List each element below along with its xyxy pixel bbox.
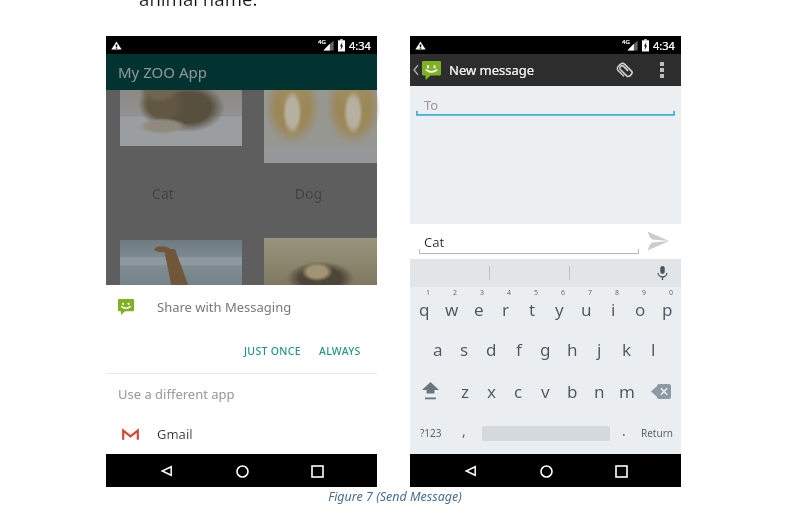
button[interactable]: ,	[452, 412, 476, 454]
staticText: Share with Messaging	[157, 298, 292, 316]
staticText: JUST ONCE	[244, 344, 301, 358]
button[interactable]: z	[451, 370, 478, 412]
button[interactable]: 2	[438, 287, 465, 328]
staticText: p	[662, 298, 673, 321]
button[interactable]: m	[613, 370, 640, 412]
staticText: Cat	[424, 233, 445, 251]
button[interactable]: a	[424, 328, 451, 370]
staticText: Use a different app	[118, 385, 235, 403]
button[interactable]: x	[478, 370, 505, 412]
button[interactable]: s	[451, 328, 478, 370]
staticText: 7	[588, 288, 593, 298]
button[interactable]: 4	[492, 287, 519, 328]
staticText: ,	[462, 421, 466, 440]
button[interactable]: More options	[650, 58, 674, 82]
staticText: k	[622, 338, 632, 361]
staticText: 2	[453, 288, 458, 298]
staticText: d	[486, 338, 497, 361]
staticText: 3	[480, 288, 485, 298]
staticText: q	[419, 298, 430, 321]
staticText: 4G	[622, 38, 630, 46]
button[interactable]: Recent apps	[606, 456, 636, 486]
staticText: g	[540, 338, 551, 361]
staticText: .	[622, 421, 626, 440]
staticText: n	[594, 380, 605, 403]
staticText: ?123	[420, 426, 442, 440]
staticText: 6	[561, 288, 566, 298]
button[interactable]: 8	[600, 287, 627, 328]
button[interactable]: 1	[410, 287, 438, 328]
button[interactable]: JUST ONCE	[237, 337, 308, 365]
staticText: x	[487, 380, 496, 403]
button[interactable]: Recent apps	[302, 456, 332, 486]
staticText: r	[502, 298, 510, 321]
staticText: j	[597, 338, 602, 361]
button[interactable]: d	[478, 328, 505, 370]
staticText: Cat	[132, 184, 194, 203]
button[interactable]: 7	[573, 287, 600, 328]
button[interactable]: Voice input	[649, 260, 675, 286]
staticText: 0	[669, 288, 674, 298]
button[interactable]: 9	[627, 287, 654, 328]
staticText: 5	[534, 288, 539, 298]
staticText: Figure 7 (Send Message)	[0, 488, 800, 505]
staticText: a	[433, 338, 443, 361]
button[interactable]: Back	[456, 456, 486, 486]
staticText: e	[474, 298, 484, 321]
staticText: y	[555, 298, 564, 321]
staticText: Dog	[277, 184, 340, 203]
staticText: b	[567, 380, 578, 403]
button[interactable]: j	[586, 328, 613, 370]
staticText: 4G	[318, 38, 326, 46]
staticText: c	[514, 380, 523, 403]
staticText: 8	[615, 288, 620, 298]
staticText: 4:34	[653, 38, 675, 53]
button[interactable]: k	[613, 328, 640, 370]
button[interactable]: v	[532, 370, 559, 412]
button[interactable]: c	[505, 370, 532, 412]
staticText: m	[619, 380, 635, 403]
button[interactable]: Attach file	[610, 56, 638, 84]
button[interactable]: Shift	[410, 370, 451, 412]
button[interactable]: 3	[465, 287, 492, 328]
button[interactable]: 5	[519, 287, 546, 328]
button[interactable]: Send	[644, 227, 672, 255]
staticText: z	[461, 380, 469, 403]
button[interactable]: ?123	[410, 412, 452, 454]
button[interactable]: h	[559, 328, 586, 370]
staticText: h	[567, 338, 578, 361]
button[interactable]: 6	[546, 287, 573, 328]
staticText: To	[424, 96, 439, 114]
button[interactable]: Back	[152, 456, 182, 486]
staticText: ALWAYS	[319, 344, 361, 358]
button[interactable]: Gmail	[106, 414, 377, 453]
button[interactable]: Space	[482, 412, 610, 454]
staticText: v	[541, 380, 550, 403]
staticText: New message	[449, 61, 535, 79]
staticText: l	[651, 338, 656, 361]
staticText: i	[611, 298, 616, 321]
staticText: 1	[426, 288, 431, 298]
button[interactable]: g	[532, 328, 559, 370]
button[interactable]: ALWAYS	[312, 337, 368, 365]
button[interactable]: l	[640, 328, 667, 370]
staticText: My ZOO App	[118, 62, 207, 82]
button[interactable]: Home	[531, 456, 561, 486]
staticText: w	[445, 298, 459, 321]
staticText: f	[516, 338, 522, 361]
button[interactable]: Return	[632, 412, 681, 454]
button[interactable]: f	[505, 328, 532, 370]
staticText: animal name:	[139, 0, 258, 11]
button[interactable]: Share with Messaging	[106, 285, 377, 329]
staticText: Gmail	[157, 425, 193, 443]
button[interactable]: 0	[654, 287, 681, 328]
button[interactable]: .	[616, 412, 632, 454]
button[interactable]: n	[586, 370, 613, 412]
staticText: 9	[642, 288, 647, 298]
button[interactable]: b	[559, 370, 586, 412]
staticText: u	[581, 298, 592, 321]
staticText: 4:34	[349, 38, 371, 53]
button[interactable]: Home	[227, 456, 257, 486]
staticText: t	[529, 298, 536, 321]
button[interactable]: Backspace	[640, 370, 681, 412]
